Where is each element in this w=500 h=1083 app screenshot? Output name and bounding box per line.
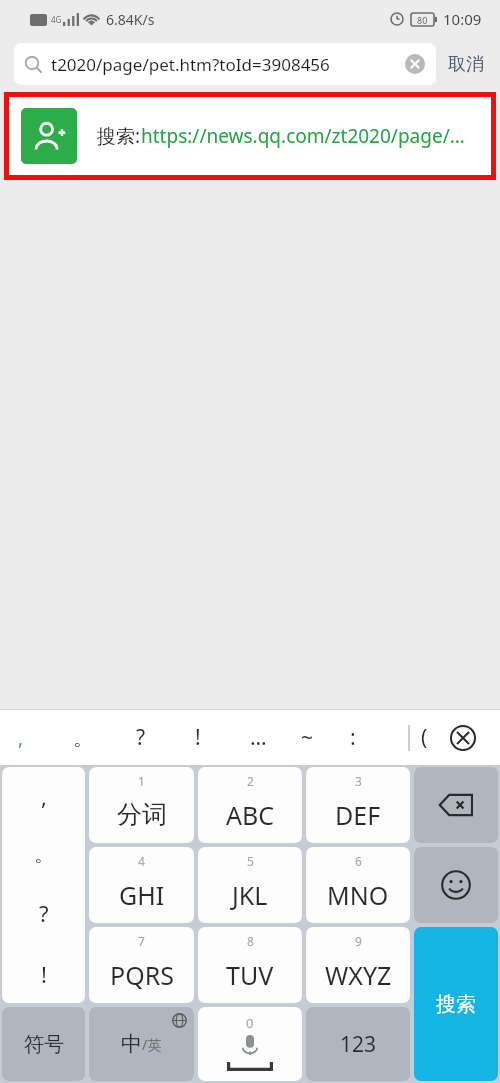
staticText: 5: [247, 853, 254, 869]
staticText: 符号: [24, 1032, 64, 1057]
staticText: 0: [246, 1014, 254, 1032]
staticText: ?: [39, 898, 49, 928]
button[interactable]: 7: [89, 927, 194, 1003]
button[interactable]: 1: [89, 767, 194, 843]
staticText: 8: [247, 933, 254, 949]
staticText: DEF: [335, 798, 381, 832]
staticText: 中: [121, 1031, 142, 1057]
staticText: 6: [355, 853, 362, 869]
staticText: ~: [301, 723, 314, 752]
staticText: :: [350, 723, 356, 752]
button[interactable]: 2: [198, 767, 302, 843]
button[interactable]: 3: [306, 767, 410, 843]
staticText: ?: [136, 723, 146, 752]
staticText: 6.84K/s: [106, 10, 155, 29]
staticText: MNO: [327, 878, 389, 912]
staticText: 搜索:: [97, 123, 141, 149]
button[interactable]: 符号: [2, 1007, 85, 1081]
button[interactable]: t2020/page/pet.htm?toId=3908456: [14, 43, 436, 85]
button[interactable]: [414, 847, 498, 923]
staticText: 。: [73, 725, 94, 751]
staticText: TUV: [226, 958, 274, 992]
staticText: 分词: [117, 799, 167, 830]
button[interactable]: ,: [2, 767, 85, 1003]
staticText: (: [421, 723, 428, 752]
staticText: 10:09: [443, 9, 482, 29]
staticText: ,: [41, 781, 47, 811]
button[interactable]: Close symbols: [441, 716, 485, 760]
button[interactable]: :: [331, 710, 375, 765]
button[interactable]: 搜索: [414, 927, 498, 1081]
button[interactable]: !: [176, 710, 220, 765]
button[interactable]: 取消: [436, 53, 486, 76]
staticText: 取消: [448, 53, 484, 76]
button[interactable]: 搜索:: [9, 97, 491, 175]
staticText: 4: [138, 853, 145, 869]
button[interactable]: ?: [119, 710, 163, 765]
button[interactable]: [414, 767, 498, 843]
staticText: 123: [340, 1030, 377, 1059]
staticText: 9: [355, 933, 362, 949]
staticText: JKL: [232, 878, 268, 912]
staticText: ABC: [226, 798, 275, 832]
button[interactable]: 9: [306, 927, 410, 1003]
button[interactable]: (: [402, 710, 446, 765]
staticText: 80: [417, 14, 428, 26]
staticText: ,: [18, 725, 24, 751]
staticText: 7: [138, 933, 145, 949]
button[interactable]: 中: [89, 1007, 194, 1081]
staticText: 搜索: [436, 992, 476, 1017]
button[interactable]: ,: [0, 710, 43, 765]
button[interactable]: 0: [198, 1007, 302, 1081]
button[interactable]: 4: [89, 847, 194, 923]
button[interactable]: ~: [285, 710, 329, 765]
staticText: WXYZ: [325, 958, 392, 992]
staticText: !: [41, 959, 47, 989]
button[interactable]: 6: [306, 847, 410, 923]
staticText: 。: [34, 842, 54, 867]
button[interactable]: 。: [61, 710, 105, 765]
staticText: t2020/page/pet.htm?toId=3908456: [51, 53, 400, 76]
staticText: PQRS: [110, 958, 174, 992]
button[interactable]: Clear text: [404, 53, 426, 75]
staticText: 1: [138, 773, 145, 789]
staticText: 3: [355, 773, 362, 789]
staticText: GHI: [119, 878, 165, 912]
staticText: https://news.qq.com/zt2020/page/…: [141, 123, 465, 149]
staticText: …: [250, 723, 267, 752]
button[interactable]: 123: [306, 1007, 410, 1081]
button[interactable]: …: [236, 710, 280, 765]
staticText: 2: [247, 773, 254, 789]
staticText: 4G: [51, 14, 62, 25]
staticText: !: [195, 723, 201, 752]
button[interactable]: 8: [198, 927, 302, 1003]
button[interactable]: 5: [198, 847, 302, 923]
staticText: /英: [142, 1035, 162, 1054]
